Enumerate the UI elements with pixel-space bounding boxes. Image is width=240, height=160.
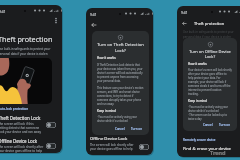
staticText: How it works [97,56,116,60]
staticText: Cancel [115,127,125,131]
staticText: Keep in mind [188,99,207,103]
button[interactable]: Theft Detection Lock [0,115,62,134]
staticText: Turn on [131,127,143,131]
staticText: Use built-in safeguards to protect your … [0,47,51,55]
staticText: The screen will lock if this setting det… [0,122,44,134]
staticText: Offline Device Lock [0,138,38,144]
button[interactable]: Cancel [202,122,214,128]
staticText: Auto-lock protection [0,107,29,111]
staticText: Trend [210,149,226,156]
button[interactable]: Cancel [114,126,126,132]
button[interactable]: Toggle [46,122,56,128]
staticText: If Theft Detection Lock detects that you… [97,63,144,83]
staticText: Turn on Theft Detection Lock? [97,42,144,53]
staticText: Offline Device Lock [90,136,128,142]
staticText: Remotely secure device [183,138,216,142]
button[interactable]: Back [180,19,188,27]
staticText: 9:41 [90,12,97,16]
staticText: 9:41 [0,9,6,13]
staticText: Theft protection [0,34,53,44]
staticText: The screen will lock shortly after your … [0,145,44,153]
button[interactable]: Turn on [218,122,232,128]
staticText: Theft protection [194,21,225,26]
staticText: This feature uses your device's motion s… [97,86,144,106]
staticText: Theft Detection Lock [0,115,41,121]
staticText: Use built-in safeguards to protect your … [183,30,234,38]
staticText: The screen will lock shortly after your … [90,143,137,151]
staticText: 9:41 [181,10,188,14]
button[interactable]: Toggle [46,143,56,149]
staticText: · You must be actively using your device… [97,115,144,123]
button[interactable]: Turn on [130,126,144,132]
staticText: Turn on [219,123,231,127]
staticText: How it works [188,62,207,66]
button[interactable]: Offline Device Lock [0,138,62,153]
staticText: · You must be actively using your device… [188,105,232,121]
button[interactable]: Back [89,20,98,29]
button[interactable]: Toggle [139,144,149,150]
staticText: Find & erase your device [183,146,231,152]
staticText: Your device's screen will lock shortly a… [188,68,232,96]
staticText: Turn on Offline Device Lock? [188,49,232,59]
staticText: Keep in mind [97,109,116,113]
staticText: Cancel [203,123,213,127]
